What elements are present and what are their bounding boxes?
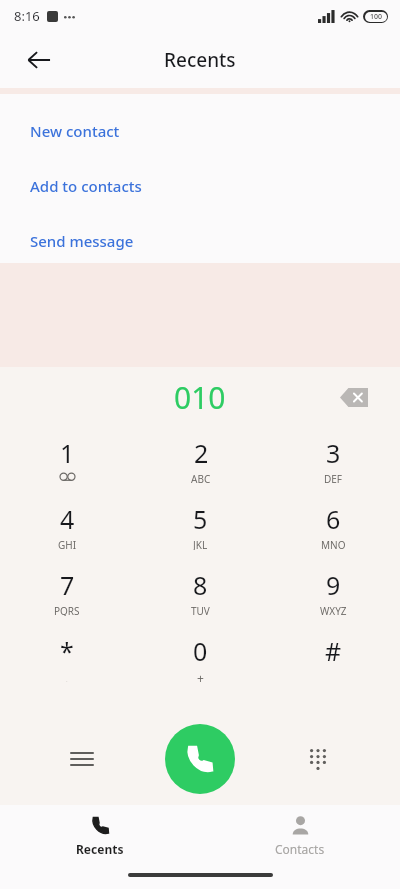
button[interactable]: * xyxy=(0,625,134,691)
staticText: 4 xyxy=(60,502,75,536)
staticText: + xyxy=(197,670,204,682)
staticText: 2 xyxy=(194,436,209,470)
button[interactable]: Dialpad xyxy=(296,737,340,781)
staticText: 5 xyxy=(193,502,208,536)
button[interactable]: 0 xyxy=(134,625,267,691)
button[interactable]: Add to contacts xyxy=(0,175,400,197)
button[interactable]: 4 xyxy=(0,493,134,559)
staticText: * xyxy=(60,634,74,668)
button[interactable]: 7 xyxy=(0,559,134,625)
button[interactable]: Contacts xyxy=(200,805,400,867)
staticText: GHI xyxy=(58,538,77,550)
button[interactable]: 3 xyxy=(267,427,400,493)
staticText: 8 xyxy=(193,568,208,602)
staticText: TUV xyxy=(191,604,210,616)
button[interactable]: # xyxy=(267,625,400,691)
button[interactable]: 2 xyxy=(134,427,267,493)
button[interactable]: 9 xyxy=(267,559,400,625)
staticText: MNO xyxy=(321,538,346,550)
button[interactable]: New contact xyxy=(0,120,400,142)
staticText: ABC xyxy=(191,472,211,484)
staticText: Add to contacts xyxy=(30,176,142,196)
button[interactable]: 1 xyxy=(0,427,134,493)
staticText: 8:16 xyxy=(14,7,40,25)
staticText: Contacts xyxy=(275,841,325,857)
staticText: Recents xyxy=(164,47,236,73)
button[interactable]: Backspace xyxy=(332,375,376,419)
staticText: Send message xyxy=(30,231,134,251)
button[interactable]: Call xyxy=(165,724,235,794)
button[interactable]: 5 xyxy=(134,493,267,559)
button[interactable]: Back xyxy=(16,37,62,83)
staticText: 9 xyxy=(326,568,341,602)
staticText: JKL xyxy=(193,538,208,550)
staticText: New contact xyxy=(30,121,120,141)
staticText: 010 xyxy=(174,377,226,418)
button[interactable]: 6 xyxy=(267,493,400,559)
staticText: PQRS xyxy=(54,604,80,616)
staticText: 100 xyxy=(370,12,383,22)
staticText: # xyxy=(325,634,342,668)
button[interactable]: Menu xyxy=(60,737,104,781)
button[interactable]: Send message xyxy=(0,230,400,252)
staticText: WXYZ xyxy=(320,604,347,616)
staticText: 6 xyxy=(326,502,341,536)
staticText: 7 xyxy=(60,568,75,602)
staticText: 1 xyxy=(60,436,75,470)
button[interactable]: 8 xyxy=(134,559,267,625)
staticText: DEF xyxy=(324,472,343,484)
button[interactable]: Recents xyxy=(0,805,200,867)
staticText: Recents xyxy=(76,841,124,857)
staticText: 0 xyxy=(193,634,208,668)
staticText: 3 xyxy=(326,436,341,470)
